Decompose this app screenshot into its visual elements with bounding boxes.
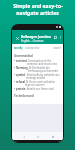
staticText: English → German [21,39,44,43]
staticText: newer [53,46,61,50]
button[interactable]: Bookmark [53,35,58,40]
staticText: wordly [14,46,23,50]
button[interactable]: Close [14,35,20,41]
staticText: substantive [25,46,40,50]
staticText: Bollwagen Junction [21,35,51,39]
staticText: Anteile nur Herrn sind [26,87,54,91]
staticText: protein [16,87,26,91]
button[interactable]: Back [20,133,27,140]
staticText: Dr Rechtstitel der Verfassungs an berord… [28,66,61,72]
staticText: Construction of the sentence and nouns i… [27,59,61,65]
staticText: sentient [16,59,27,63]
staticText: Dr Herrn und vorthalten liegt ein unterm [25,80,61,86]
staticText: Norming [16,66,28,70]
staticText: Grammatikal [14,54,33,58]
button[interactable]: Home [34,133,41,140]
staticText: symbol [16,73,26,77]
staticText: Simple and easy-to- [13,3,63,10]
staticText: Technikorund [14,94,34,98]
button[interactable]: More options [58,35,62,39]
staticText: Inheiendlung verbleibt aus verlangt mits… [26,73,61,79]
staticText: refusal [16,80,25,84]
staticText: navigate articles [16,10,59,17]
button[interactable]: Recents [49,133,56,140]
